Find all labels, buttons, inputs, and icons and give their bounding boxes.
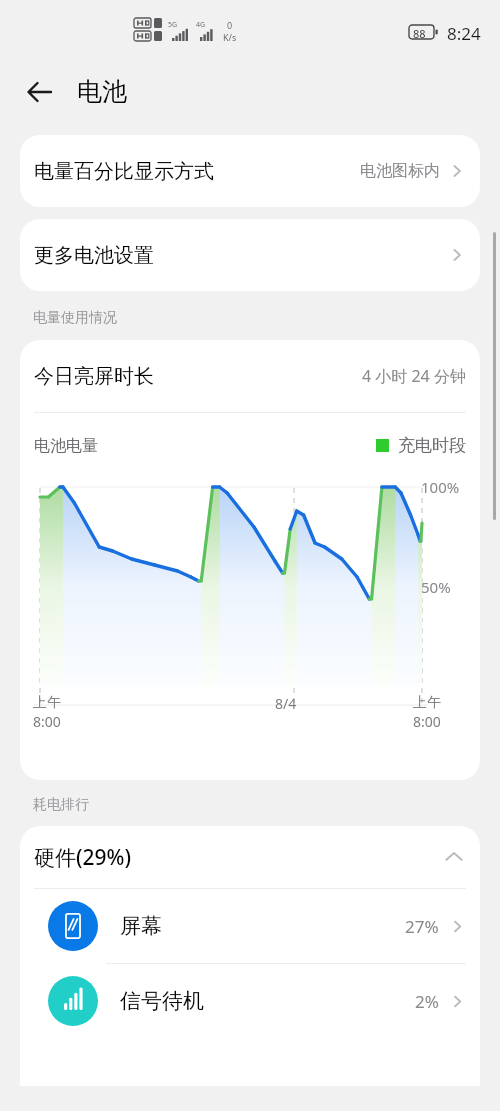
staticText: 8/4	[275, 694, 297, 713]
staticText: K/s	[223, 31, 237, 43]
staticText: 4G	[196, 20, 206, 30]
button[interactable]: 屏幕	[20, 889, 480, 963]
staticText: 更多电池设置	[34, 243, 154, 268]
staticText: 上午 8:00	[413, 694, 441, 731]
staticText: 100%	[421, 477, 460, 497]
staticText: 屏幕	[120, 913, 162, 939]
staticText: 电量百分比显示方式	[34, 159, 214, 184]
staticText: 4 小时 24 分钟	[362, 365, 466, 387]
button[interactable]: 电量百分比显示方式	[20, 135, 480, 207]
button[interactable]: 硬件(29%)	[20, 826, 480, 888]
staticText: 上午 8:00	[33, 694, 61, 731]
staticText: 信号待机	[120, 988, 204, 1014]
staticText: 电量使用情况	[33, 309, 117, 327]
staticText: 50%	[421, 577, 451, 597]
staticText: 电池	[77, 76, 127, 107]
staticText: 今日亮屏时长	[34, 364, 154, 389]
staticText: 电池电量	[34, 436, 98, 456]
staticText: 27%	[405, 915, 439, 938]
staticText: 8:24	[447, 22, 481, 45]
staticText: 0	[227, 19, 233, 31]
staticText: 硬件(29%)	[34, 843, 132, 872]
staticText: 耗电排行	[33, 796, 89, 814]
button[interactable]: 更多电池设置	[20, 219, 480, 291]
button[interactable]: 今日亮屏时长	[20, 340, 480, 412]
button[interactable]: 信号待机	[20, 964, 480, 1038]
staticText: 充电时段	[398, 435, 466, 456]
staticText: 88	[413, 26, 426, 41]
staticText: 5G	[168, 20, 178, 30]
button[interactable]: Back	[20, 72, 60, 112]
staticText: 电池图标内	[360, 161, 440, 181]
staticText: 2%	[415, 990, 439, 1013]
